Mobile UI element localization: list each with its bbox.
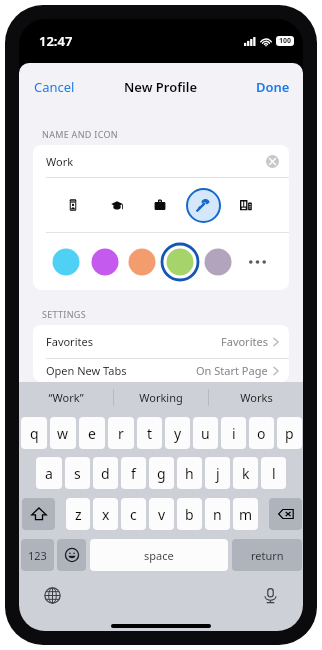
button[interactable]: u (193, 417, 218, 449)
staticText: r (118, 424, 124, 443)
staticText: q (30, 424, 39, 443)
button[interactable]: b (177, 498, 202, 530)
staticText: Cancel (34, 78, 75, 96)
button[interactable]: Clear text (264, 153, 280, 169)
staticText: Work (46, 154, 74, 169)
staticText: m (239, 505, 253, 524)
staticText: l (272, 464, 276, 483)
button[interactable]: w (50, 417, 76, 449)
button[interactable]: g (149, 457, 174, 489)
staticText: 12:47 (39, 32, 73, 50)
staticText: c (130, 505, 137, 524)
button[interactable]: y (165, 417, 190, 449)
staticText: w (57, 424, 69, 443)
button[interactable]: Works (209, 382, 303, 413)
staticText: z (75, 505, 82, 524)
button[interactable]: m (233, 498, 258, 530)
button[interactable]: q (21, 417, 47, 449)
staticText: Working (139, 390, 183, 405)
button[interactable]: f (121, 457, 146, 489)
staticText: x (102, 505, 110, 524)
staticText: t (147, 424, 153, 443)
button[interactable]: z (66, 498, 90, 530)
button[interactable]: Done (243, 70, 303, 104)
staticText: New Profile (124, 78, 198, 96)
button[interactable]: d (93, 457, 118, 489)
button[interactable]: Emoji (57, 539, 86, 571)
button[interactable]: k (233, 457, 258, 489)
staticText: On Start Page (196, 363, 268, 378)
staticText: h (185, 464, 194, 483)
button[interactable]: “Work” (19, 382, 113, 413)
button[interactable]: return (232, 539, 302, 571)
button[interactable]: Backspace (269, 498, 302, 530)
button[interactable]: e (79, 417, 105, 449)
staticText: v (158, 505, 166, 524)
button[interactable]: n (205, 498, 230, 530)
staticText: Favorites (46, 334, 93, 349)
staticText: k (242, 464, 250, 483)
button[interactable]: Favorites (33, 325, 289, 358)
staticText: g (157, 464, 166, 483)
staticText: u (201, 424, 210, 443)
staticText: Done (256, 78, 290, 96)
button[interactable]: Office (227, 186, 265, 224)
staticText: SETTINGS (42, 308, 86, 320)
button[interactable]: a (36, 457, 62, 489)
button[interactable]: s (65, 457, 90, 489)
staticText: j (216, 464, 220, 483)
staticText: b (185, 505, 194, 524)
button[interactable]: Dictate (259, 584, 281, 606)
button[interactable]: o (249, 417, 274, 449)
button[interactable]: space (90, 539, 228, 571)
staticText: e (88, 424, 96, 443)
button[interactable]: l (261, 457, 286, 489)
button[interactable]: j (205, 457, 230, 489)
staticText: s (74, 464, 81, 483)
button[interactable]: v (149, 498, 174, 530)
button[interactable]: r (108, 417, 134, 449)
staticText: i (232, 424, 236, 443)
staticText: Open New Tabs (46, 363, 127, 378)
button[interactable]: More colors (243, 248, 271, 276)
button[interactable]: Cancel (19, 70, 90, 104)
button[interactable]: h (177, 457, 202, 489)
staticText: p (285, 424, 294, 443)
button[interactable]: Work (141, 186, 179, 224)
button[interactable]: Working (114, 382, 208, 413)
button[interactable]: c (121, 498, 146, 530)
button[interactable]: Colour swatch (204, 248, 232, 276)
staticText: “Work” (48, 390, 84, 405)
button[interactable]: Colour swatch (52, 248, 80, 276)
button[interactable]: Change keyboard (41, 584, 63, 606)
staticText: o (257, 424, 266, 443)
staticText: y (174, 424, 182, 443)
staticText: return (251, 548, 284, 563)
button[interactable]: i (221, 417, 246, 449)
button[interactable]: Shift (22, 498, 55, 530)
staticText: d (101, 464, 110, 483)
button[interactable]: Education (98, 186, 136, 224)
button[interactable]: 123 (21, 539, 54, 571)
button[interactable]: x (93, 498, 118, 530)
button[interactable]: Badge (54, 186, 92, 224)
button[interactable]: Colour swatch (166, 248, 194, 276)
button[interactable]: Colour swatch (91, 248, 119, 276)
staticText: f (131, 464, 136, 483)
button[interactable]: Open New Tabs (33, 359, 289, 382)
staticText: a (45, 464, 53, 483)
staticText: space (144, 548, 174, 563)
staticText: 100 (279, 36, 292, 46)
button[interactable]: Colour swatch (128, 248, 156, 276)
staticText: NAME AND ICON (42, 128, 118, 140)
staticText: 123 (28, 548, 47, 563)
button[interactable]: p (277, 417, 302, 449)
button[interactable]: t (137, 417, 162, 449)
staticText: Favorites (221, 334, 268, 349)
staticText: Works (240, 390, 273, 405)
button[interactable]: Tools (184, 186, 222, 224)
staticText: n (213, 505, 222, 524)
